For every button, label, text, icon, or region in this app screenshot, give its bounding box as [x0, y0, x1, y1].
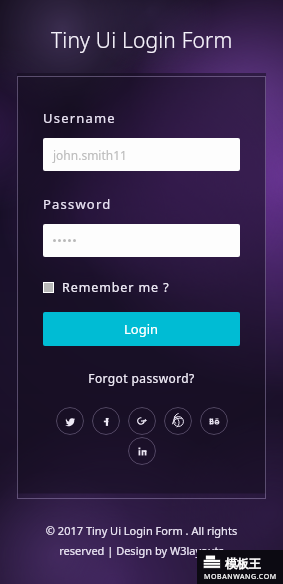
button[interactable]: Forgot password?	[84, 366, 199, 390]
staticText: Username	[43, 109, 116, 127]
button[interactable]: LinkedIn	[128, 437, 156, 465]
staticText: 模板王	[225, 556, 261, 571]
staticText: MOBANWANG.COM	[204, 572, 277, 582]
staticText: © 2017 Tiny Ui Login Form . All rights r…	[24, 523, 259, 559]
button[interactable]: Remember me ?	[43, 279, 240, 296]
button[interactable]: Google Plus	[128, 407, 156, 435]
button[interactable]: Dribbble	[164, 407, 192, 435]
staticText: Remember me ?	[62, 279, 170, 296]
button[interactable]: Facebook	[92, 407, 120, 435]
button[interactable]: Behance	[200, 407, 228, 435]
button[interactable]: Login	[43, 312, 240, 346]
staticText: Login	[124, 320, 159, 338]
staticText: Tiny Ui Login Form	[51, 26, 233, 55]
staticText: Password	[43, 195, 112, 213]
button[interactable]: john.smith11	[43, 138, 240, 171]
staticText: john.smith11	[53, 147, 127, 163]
staticText: Forgot password?	[88, 370, 195, 386]
button[interactable]	[43, 224, 240, 257]
button[interactable]: Twitter	[56, 407, 84, 435]
